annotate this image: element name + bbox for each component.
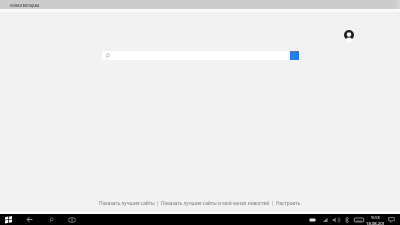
button[interactable]: Start — [3, 214, 14, 225]
staticText: | — [155, 200, 161, 207]
staticText: | — [270, 200, 276, 207]
button[interactable]: 9:13 — [365, 215, 386, 225]
button[interactable]: Volume — [330, 214, 341, 225]
button[interactable]: Notifications — [386, 214, 397, 225]
button[interactable]: Search — [46, 214, 57, 225]
button[interactable]: Bluetooth — [341, 214, 352, 225]
button[interactable]: Battery — [307, 214, 318, 225]
button[interactable]: Настроить — [276, 200, 301, 207]
button[interactable]: Keyboard — [353, 214, 364, 225]
button[interactable]: Account — [343, 29, 354, 40]
button[interactable]: Показать лучшие сайты — [99, 200, 155, 207]
staticText: 18.08.2016 — [365, 221, 386, 225]
button[interactable]: Task view — [66, 214, 77, 225]
button[interactable] — [102, 51, 289, 60]
staticText: НОВАЯ ВКЛАДКА — [10, 4, 40, 8]
staticText: 9:13 — [371, 215, 380, 221]
button[interactable]: Wi-Fi — [319, 214, 330, 225]
button[interactable]: Back — [24, 214, 35, 225]
button[interactable]: Показать лучшие сайты и мой канал новост… — [161, 200, 270, 207]
